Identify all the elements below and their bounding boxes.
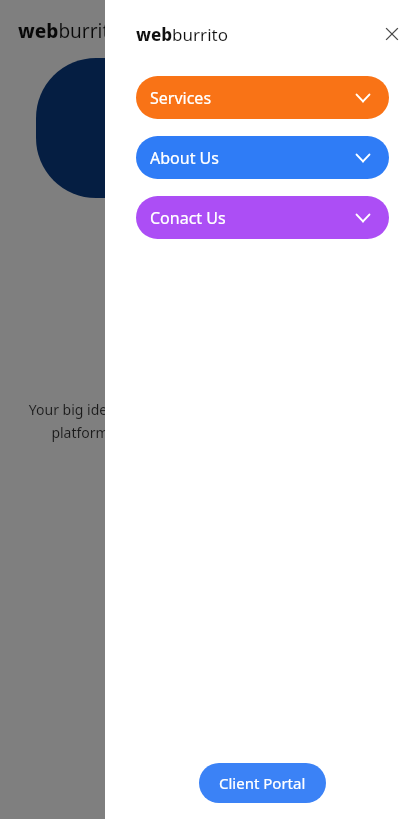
button[interactable]: Close menu (374, 16, 410, 52)
button[interactable]: Client Portal (199, 763, 326, 803)
staticText: webburrito (18, 18, 121, 44)
staticText: Custom (130, 120, 291, 177)
button[interactable]: Services (136, 76, 389, 119)
staticText: Client Portal (219, 773, 306, 793)
button[interactable]: About Us (136, 136, 389, 179)
staticText: Fully Customized (0, 545, 420, 578)
staticText: webburrito (136, 23, 228, 46)
staticText: Apps (158, 183, 262, 240)
staticText: Services (150, 87, 212, 109)
staticText: Let's build it together (0, 638, 420, 657)
button[interactable]: Conact Us (136, 196, 389, 239)
staticText: Conact Us (150, 207, 226, 229)
staticText: About Us (150, 147, 219, 169)
staticText: Your big idea deserves a real solution. … (26, 400, 394, 465)
